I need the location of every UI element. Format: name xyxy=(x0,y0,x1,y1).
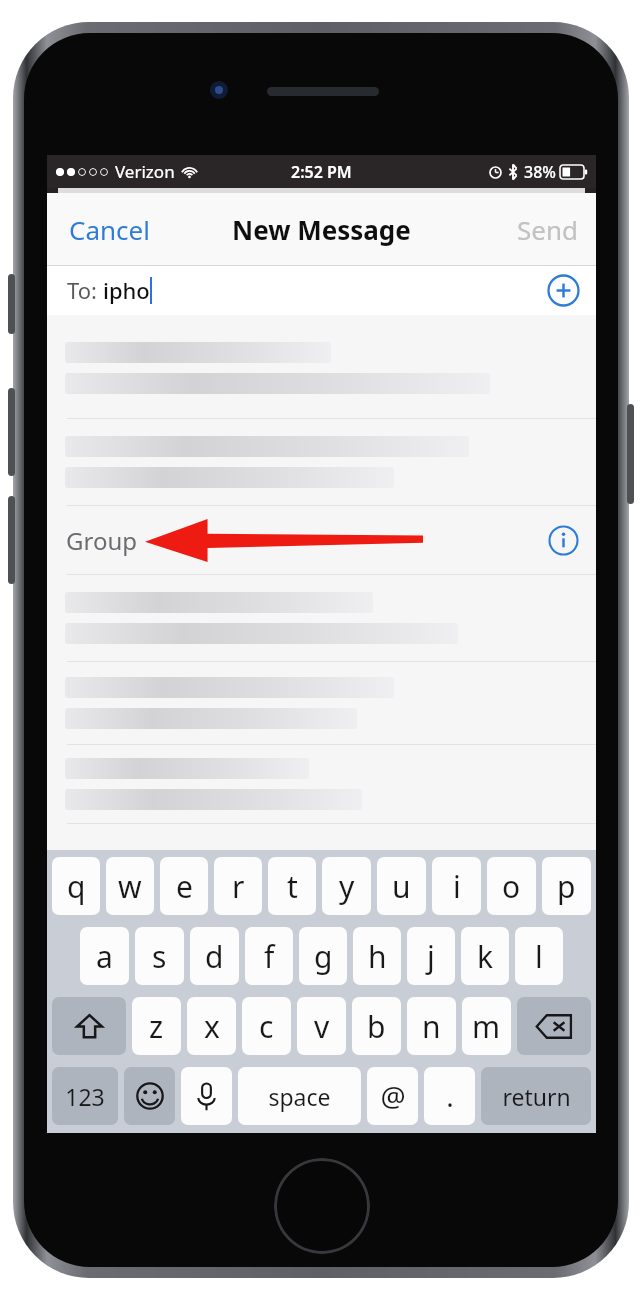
button[interactable]: space xyxy=(238,1067,361,1125)
button[interactable]: Send xyxy=(499,198,596,261)
button[interactable]: Cancel xyxy=(47,198,172,261)
button[interactable]: d xyxy=(190,927,239,985)
button[interactable] xyxy=(47,419,596,505)
button[interactable]: Dictation xyxy=(181,1067,232,1125)
staticText: To: xyxy=(67,275,103,305)
staticText: w xyxy=(118,866,142,907)
button[interactable] xyxy=(47,575,596,661)
button[interactable]: w xyxy=(106,857,154,915)
button[interactable]: p xyxy=(542,857,591,915)
button[interactable]: k xyxy=(461,927,509,985)
button[interactable]: a xyxy=(80,927,129,985)
staticText: Verizon xyxy=(115,160,175,183)
staticText: @ xyxy=(380,1077,406,1115)
staticText: z xyxy=(149,1006,164,1047)
staticText: s xyxy=(152,936,167,977)
staticText: m xyxy=(472,1006,501,1047)
staticText: t xyxy=(287,866,298,907)
staticText: q xyxy=(67,866,86,907)
button[interactable]: o xyxy=(487,857,536,915)
staticText: space xyxy=(268,1081,331,1112)
staticText: u xyxy=(392,866,411,907)
button[interactable]: Group xyxy=(47,506,596,574)
staticText: a xyxy=(96,936,113,977)
staticText: v xyxy=(314,1006,330,1047)
staticText: p xyxy=(557,866,576,907)
staticText: i xyxy=(453,866,461,907)
button[interactable]: j xyxy=(407,927,455,985)
button[interactable]: Add contact xyxy=(547,274,580,307)
button[interactable]: y xyxy=(322,857,371,915)
staticText: j xyxy=(427,936,435,977)
button[interactable]: q xyxy=(52,857,100,915)
staticText: b xyxy=(367,1006,386,1047)
staticText: k xyxy=(477,936,494,977)
button[interactable]: 123 xyxy=(52,1067,118,1125)
staticText: n xyxy=(422,1006,441,1047)
staticText: Cancel xyxy=(69,212,150,247)
staticText: h xyxy=(368,936,387,977)
button[interactable]: x xyxy=(187,997,236,1055)
staticText: y xyxy=(339,866,355,907)
button[interactable]: Backspace xyxy=(517,997,591,1055)
staticText: l xyxy=(535,936,543,977)
button[interactable]: l xyxy=(515,927,563,985)
button[interactable] xyxy=(47,662,596,744)
button[interactable]: Emoji xyxy=(124,1067,175,1125)
button[interactable] xyxy=(47,318,596,418)
staticText: 2:52 PM xyxy=(291,161,352,183)
button[interactable] xyxy=(47,745,596,823)
staticText: Send xyxy=(517,212,578,247)
button[interactable]: z xyxy=(132,997,181,1055)
button[interactable]: v xyxy=(297,997,346,1055)
staticText: New Message xyxy=(232,212,411,247)
staticText: . xyxy=(446,1077,454,1115)
staticText: f xyxy=(264,936,275,977)
staticText: c xyxy=(259,1006,274,1047)
staticText: ipho xyxy=(103,275,150,305)
button[interactable]: Info xyxy=(548,525,579,556)
button[interactable]: c xyxy=(242,997,291,1055)
staticText: Group xyxy=(66,524,138,557)
staticText: return xyxy=(502,1081,571,1112)
button[interactable]: s xyxy=(135,927,184,985)
button[interactable]: r xyxy=(214,857,262,915)
button[interactable]: e xyxy=(160,857,208,915)
button[interactable]: i xyxy=(432,857,481,915)
button[interactable]: @ xyxy=(367,1067,418,1125)
button[interactable]: b xyxy=(352,997,401,1055)
staticText: 123 xyxy=(65,1081,105,1112)
staticText: o xyxy=(502,866,521,907)
staticText: g xyxy=(314,936,333,977)
button[interactable]: Home xyxy=(274,1158,370,1254)
button[interactable]: return xyxy=(481,1067,591,1125)
button[interactable]: Shift xyxy=(52,997,126,1055)
button[interactable]: h xyxy=(353,927,401,985)
staticText: d xyxy=(205,936,224,977)
button[interactable]: f xyxy=(245,927,293,985)
button[interactable]: u xyxy=(377,857,426,915)
button[interactable]: . xyxy=(424,1067,475,1125)
button[interactable]: n xyxy=(407,997,456,1055)
button[interactable]: t xyxy=(268,857,316,915)
staticText: e xyxy=(176,866,193,907)
staticText: x xyxy=(204,1006,220,1047)
button[interactable]: m xyxy=(462,997,511,1055)
button[interactable]: g xyxy=(299,927,347,985)
staticText: 38% xyxy=(524,161,556,183)
staticText: r xyxy=(232,866,245,907)
